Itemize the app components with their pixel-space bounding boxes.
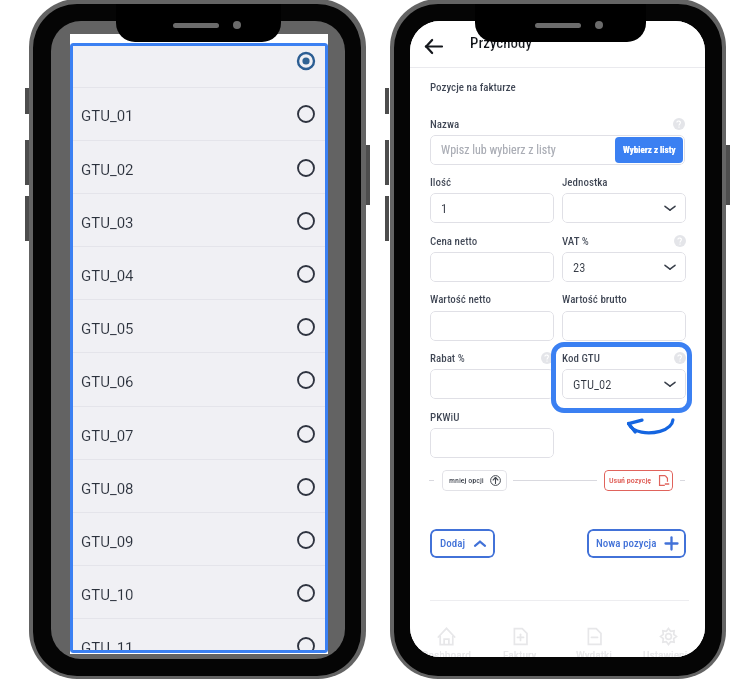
button[interactable]: Ustawienia: [631, 628, 705, 657]
button[interactable]: GTU_03: [70, 194, 328, 247]
staticText: Cena netto: [430, 235, 478, 248]
button[interactable]: GTU_08: [70, 460, 328, 513]
button[interactable]: GTU_02: [562, 369, 686, 399]
staticText: Przychody: [470, 34, 532, 52]
button[interactable]: Wydatki: [557, 628, 631, 657]
button[interactable]: [430, 311, 554, 341]
staticText: GTU_04: [81, 267, 134, 285]
button[interactable]: Usuń pozycję: [604, 470, 673, 491]
button[interactable]: [70, 45, 328, 88]
button[interactable]: [562, 311, 686, 341]
staticText: PKWiU: [430, 411, 460, 424]
staticText: Wartość brutto: [562, 293, 627, 306]
staticText: GTU_02: [81, 161, 134, 179]
button[interactable]: [562, 193, 686, 223]
button[interactable]: GTU_02: [70, 141, 328, 194]
staticText: VAT %: [562, 235, 589, 248]
staticText: GTU_11: [81, 639, 134, 653]
staticText: Usuń pozycję: [609, 476, 652, 485]
staticText: Wartość netto: [430, 293, 492, 306]
button[interactable]: [430, 369, 554, 399]
staticText: GTU_08: [81, 480, 134, 498]
staticText: Pozycje na fakturze: [430, 81, 516, 94]
staticText: Nowa pozycja: [596, 537, 657, 550]
button[interactable]: GTU_05: [70, 300, 328, 353]
button[interactable]: GTU_07: [70, 407, 328, 460]
staticText: Dodaj: [440, 537, 466, 550]
button[interactable]: 23: [562, 252, 686, 282]
button[interactable]: GTU_09: [70, 513, 328, 566]
button[interactable]: Wpisz lub wybierz z listy: [430, 135, 685, 165]
staticText: Dashboard: [422, 648, 471, 657]
staticText: GTU_10: [81, 586, 134, 604]
staticText: GTU_09: [81, 533, 134, 551]
button[interactable]: GTU_01: [70, 87, 328, 140]
button[interactable]: Faktury: [483, 628, 557, 657]
staticText: Jednostka: [562, 176, 608, 189]
button[interactable]: GTU_10: [70, 566, 328, 619]
staticText: Kod GTU: [562, 352, 600, 365]
button[interactable]: 1: [430, 193, 554, 223]
staticText: GTU_06: [81, 373, 134, 391]
staticText: GTU_02: [573, 377, 612, 392]
button[interactable]: GTU_11: [70, 619, 328, 653]
button[interactable]: Back: [419, 32, 447, 60]
button[interactable]: Dodaj: [430, 529, 495, 558]
staticText: Ustawienia: [643, 648, 693, 657]
button[interactable]: [430, 428, 554, 458]
button[interactable]: [430, 252, 554, 282]
staticText: Ilość: [430, 176, 452, 189]
button[interactable]: mniej opcji: [442, 470, 507, 491]
staticText: 23: [573, 260, 586, 275]
staticText: GTU_05: [81, 320, 134, 338]
button[interactable]: GTU_04: [70, 247, 328, 300]
staticText: GTU_07: [81, 427, 134, 445]
staticText: Wpisz lub wybierz z listy: [441, 143, 556, 157]
button[interactable]: Dashboard: [410, 628, 483, 657]
staticText: mniej opcji: [449, 476, 484, 485]
staticText: Faktury: [503, 648, 537, 657]
button[interactable]: Nowa pozycja: [587, 529, 686, 558]
staticText: Rabat %: [430, 352, 465, 365]
button[interactable]: Wybierz z listy: [615, 137, 683, 163]
staticText: Wydatki: [576, 648, 612, 657]
staticText: 1: [441, 201, 448, 216]
staticText: Wybierz z listy: [623, 145, 676, 156]
button[interactable]: GTU_06: [70, 353, 328, 406]
staticText: GTU_03: [81, 214, 134, 232]
staticText: GTU_01: [81, 107, 134, 125]
staticText: Nazwa: [430, 118, 460, 131]
